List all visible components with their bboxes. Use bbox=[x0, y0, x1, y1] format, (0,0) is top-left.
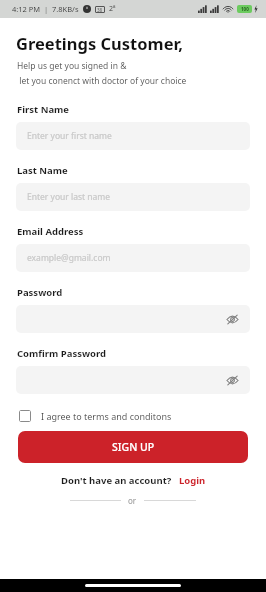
staticText: Last Name bbox=[17, 164, 68, 177]
button[interactable]: Toggle password visibility bbox=[222, 309, 242, 329]
staticText: 4:12 PM bbox=[12, 4, 41, 14]
staticText: Enter your last name bbox=[27, 191, 111, 203]
staticText: Don't have an account? bbox=[61, 474, 172, 487]
staticText: Email Address bbox=[17, 225, 84, 238]
button[interactable]: Toggle password visibility bbox=[222, 370, 242, 390]
staticText: Help us get you signed in & bbox=[17, 60, 127, 72]
staticText: First Name bbox=[17, 103, 70, 116]
button[interactable]: example@gmail.com bbox=[16, 244, 250, 272]
button[interactable]: Enter your last name bbox=[16, 183, 250, 211]
staticText: SIGN UP bbox=[112, 440, 155, 454]
staticText: Comfirm Password bbox=[17, 347, 107, 360]
staticText: 100 bbox=[241, 6, 249, 12]
button[interactable]: I agree to terms and conditons bbox=[19, 410, 172, 422]
staticText: Greetings Customer, bbox=[16, 32, 183, 54]
button[interactable]: Enter your first name bbox=[16, 122, 250, 150]
button[interactable]: SIGN UP bbox=[18, 431, 248, 463]
staticText: 7.8KB/s bbox=[52, 4, 79, 14]
staticText: Login bbox=[179, 474, 206, 487]
staticText: let you conenct with doctor of your choi… bbox=[17, 75, 187, 87]
staticText: 2⁸ bbox=[109, 4, 116, 14]
staticText: | bbox=[44, 4, 49, 14]
staticText: Enter your first name bbox=[27, 130, 112, 142]
button[interactable]: Toggle password visibility bbox=[16, 366, 250, 394]
staticText: Password bbox=[17, 286, 63, 299]
staticText: example@gmail.com bbox=[27, 252, 111, 264]
button[interactable]: Toggle password visibility bbox=[16, 305, 250, 333]
staticText: I agree to terms and conditons bbox=[41, 410, 172, 422]
staticText: or bbox=[128, 495, 137, 506]
button[interactable]: Login bbox=[179, 474, 206, 487]
staticText: 38 bbox=[97, 7, 103, 13]
